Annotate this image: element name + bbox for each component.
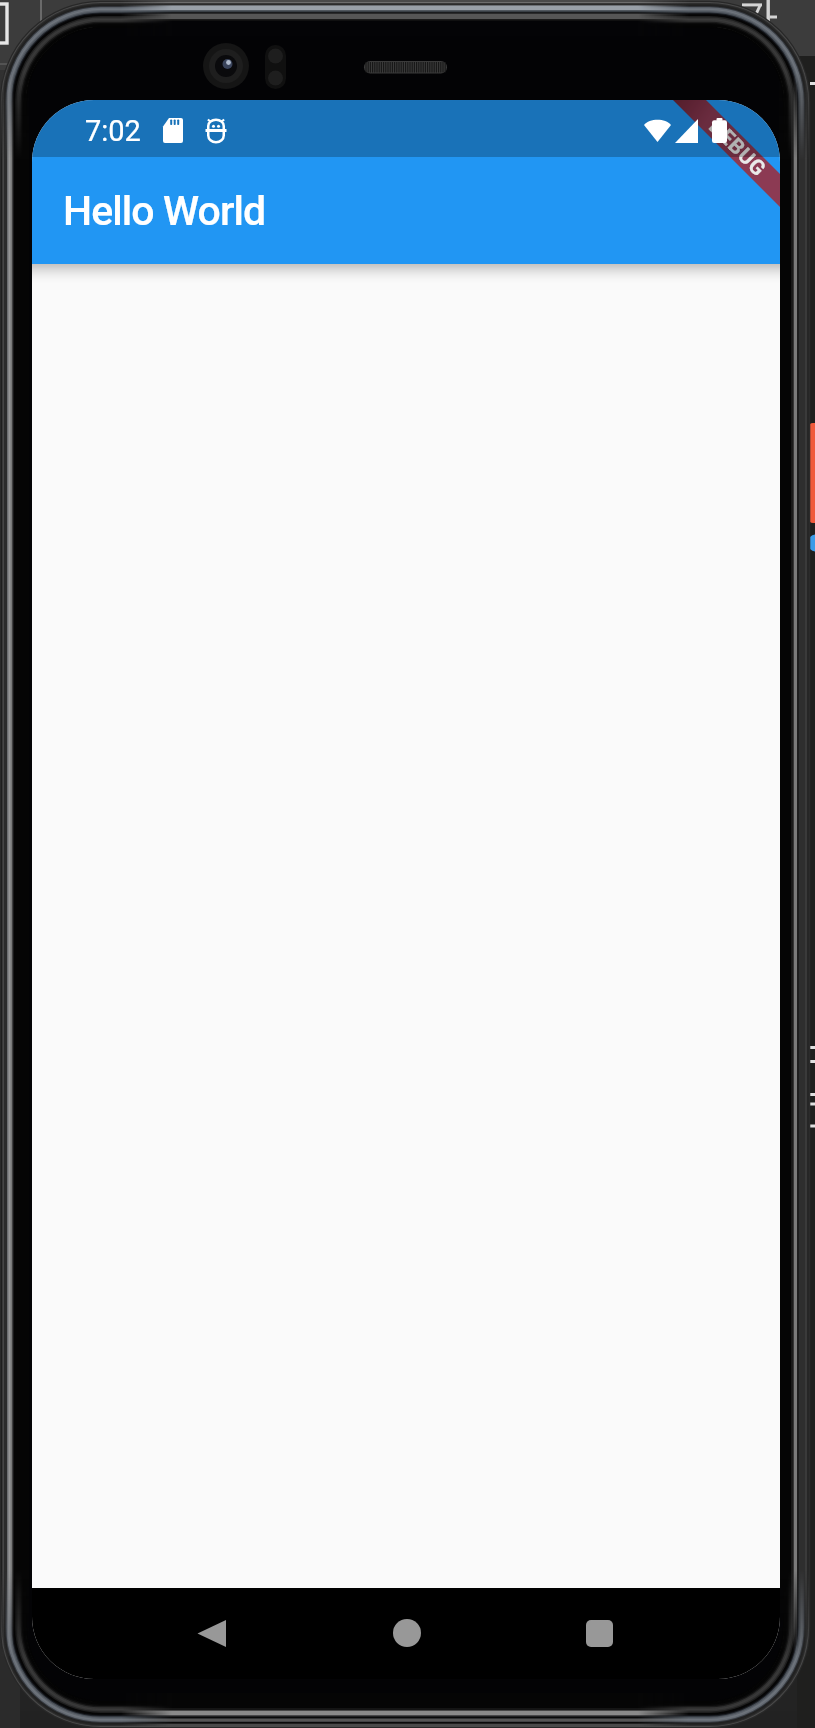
- staticText: Hello World: [63, 187, 266, 235]
- button[interactable]: Hello World: [32, 100, 780, 264]
- button[interactable]: Recents: [567, 1601, 631, 1665]
- button[interactable]: Back: [179, 1601, 243, 1665]
- staticText: 7:02: [85, 114, 141, 148]
- staticText: DEBUG: [704, 115, 771, 182]
- button[interactable]: Home: [375, 1601, 439, 1665]
